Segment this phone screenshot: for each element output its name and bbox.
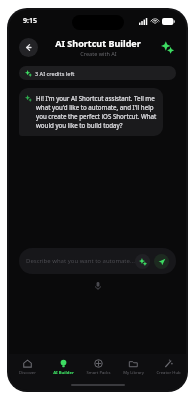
- staticText: Discover: [19, 370, 36, 376]
- button[interactable]: 3 AI credits left: [19, 66, 176, 80]
- staticText: Create with AI: [80, 50, 117, 57]
- staticText: Smart Packs: [86, 370, 111, 376]
- staticText: Hi! I'm your AI Shortcut assistant. Tell…: [36, 94, 157, 130]
- button[interactable]: AI suggest: [135, 254, 150, 269]
- button[interactable]: AI sparkle: [158, 38, 176, 56]
- staticText: 3 AI credits left: [35, 70, 75, 77]
- staticText: My Library: [123, 370, 144, 376]
- button[interactable]: Back: [19, 38, 38, 57]
- button[interactable]: My Library: [116, 354, 151, 380]
- button[interactable]: Send: [154, 254, 169, 269]
- staticText: 9:15: [23, 16, 37, 26]
- button[interactable]: Creator Hub: [151, 354, 186, 380]
- staticText: Creator Hub: [156, 370, 181, 376]
- staticText: Describe what you want to automate...: [26, 257, 135, 265]
- button[interactable]: Describe what you want to automate...: [19, 248, 176, 274]
- button[interactable]: Voice input: [92, 280, 104, 292]
- button[interactable]: Discover: [9, 354, 45, 380]
- staticText: AI Shortcut Builder: [55, 37, 141, 49]
- staticText: AI Builder: [53, 370, 74, 376]
- button[interactable]: Smart Packs: [81, 354, 116, 380]
- button[interactable]: AI Builder: [45, 354, 81, 380]
